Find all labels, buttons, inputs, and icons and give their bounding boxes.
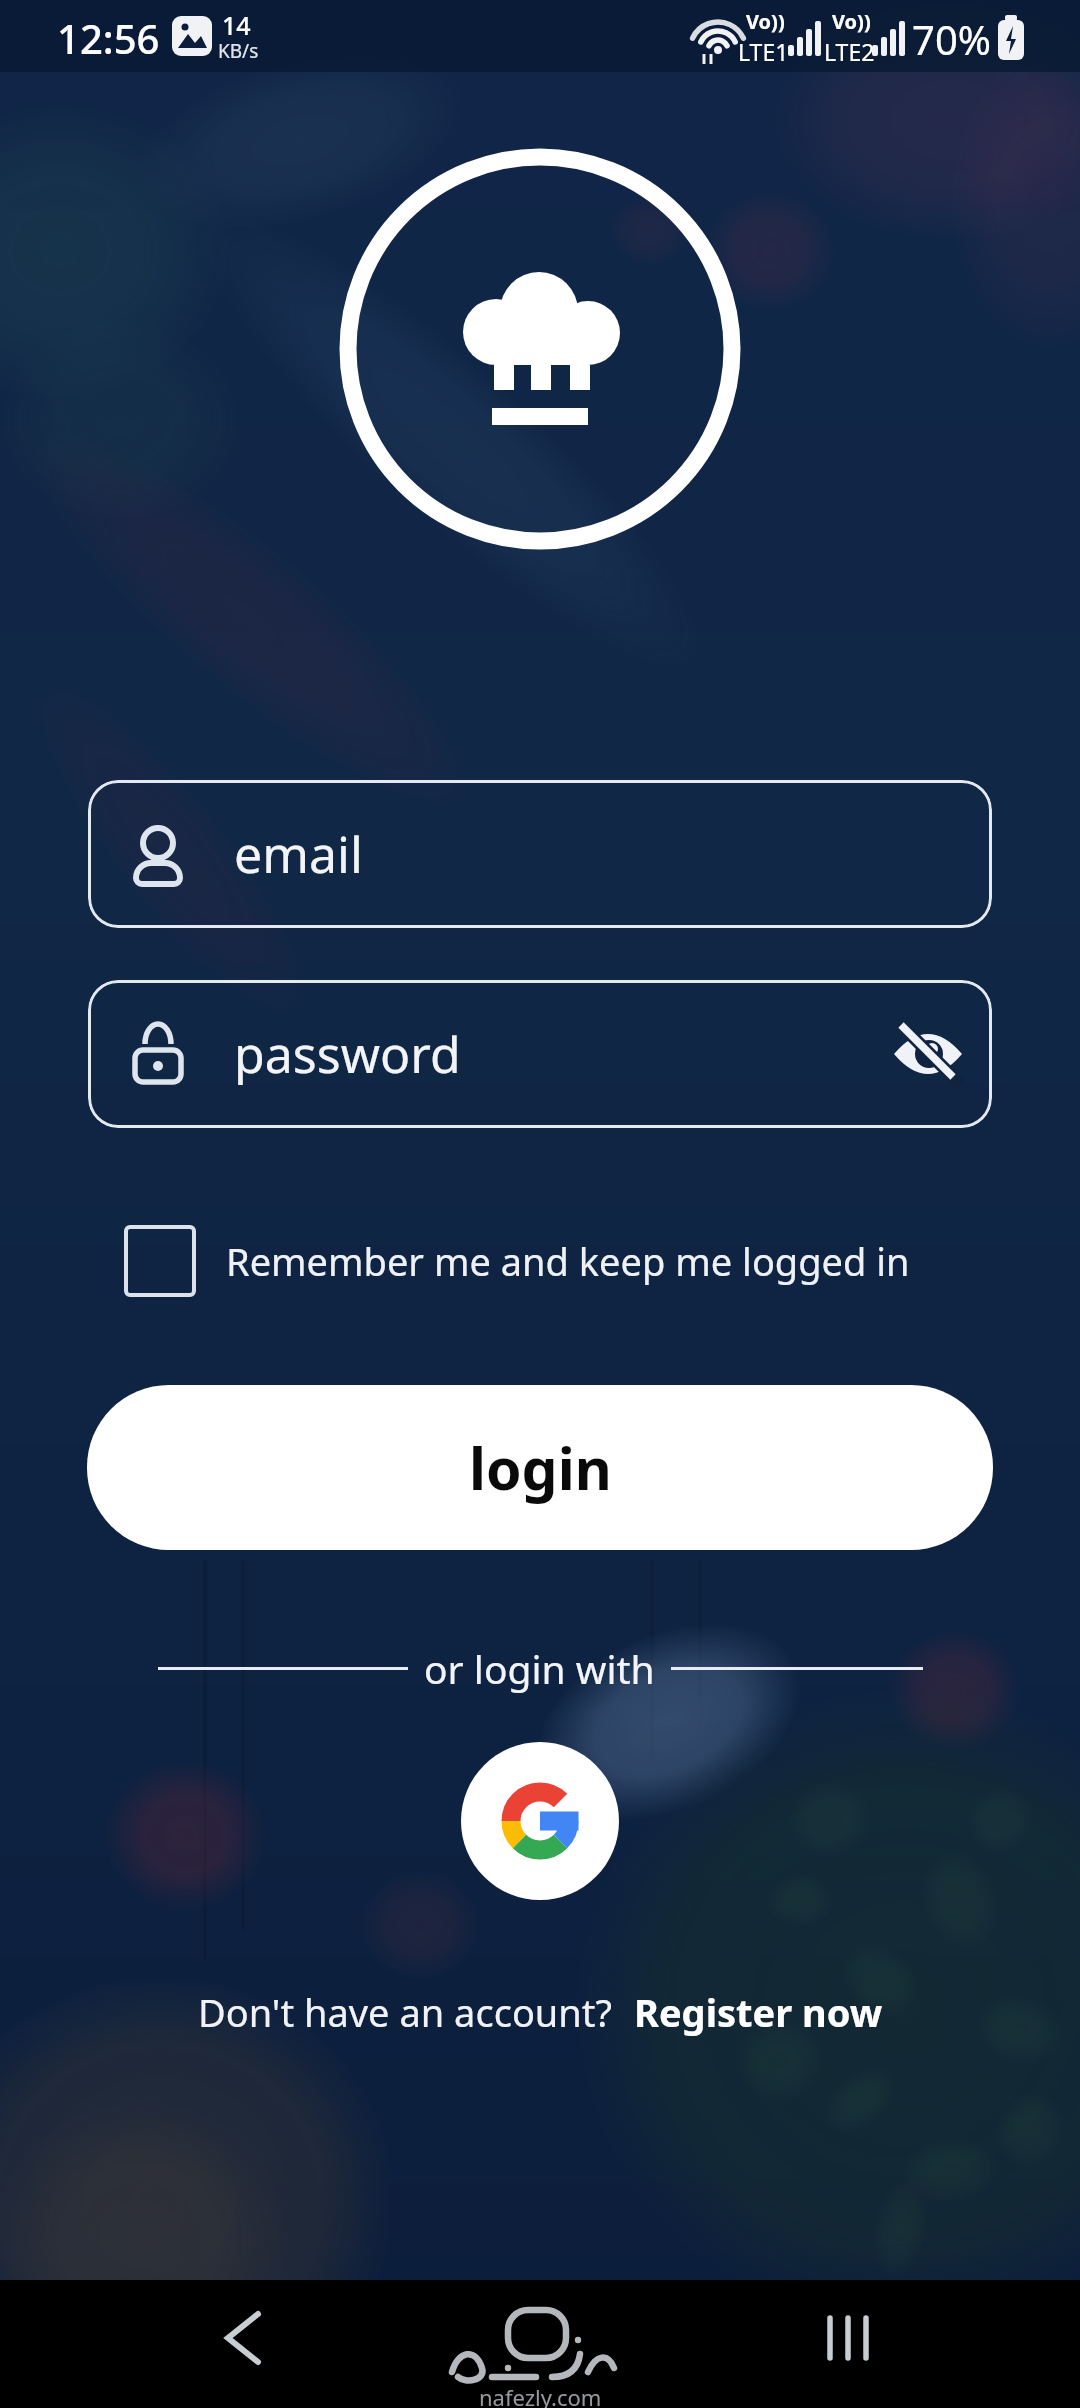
staticText: 12:56	[57, 11, 160, 65]
button[interactable]: login	[87, 1385, 993, 1550]
staticText: Vo))	[832, 8, 871, 35]
button[interactable]	[892, 1018, 964, 1090]
staticText: nafezly.com	[479, 2382, 602, 2408]
button[interactable]	[490, 2294, 590, 2394]
staticText: LTE1	[738, 36, 789, 67]
staticText: login	[469, 1429, 612, 1507]
button[interactable]	[195, 2294, 295, 2394]
staticText: Vo))	[746, 8, 785, 35]
staticText: email	[234, 820, 363, 888]
staticText: 14	[222, 8, 251, 42]
staticText: password	[234, 1020, 461, 1088]
staticText: or login with	[424, 1642, 655, 1695]
button[interactable]	[461, 1742, 619, 1900]
button[interactable]: email	[88, 780, 992, 928]
staticText: 70%	[912, 12, 991, 66]
button[interactable]	[798, 2294, 898, 2394]
button[interactable]: password	[88, 980, 992, 1128]
staticText: Remember me and keep me logged in	[226, 1235, 910, 1287]
staticText: Don't have an account?	[198, 1986, 613, 2038]
staticText: KB/s	[218, 38, 259, 64]
button[interactable]: Register now	[634, 1986, 883, 2038]
button[interactable]	[124, 1225, 196, 1297]
staticText: LTE2	[824, 36, 875, 67]
